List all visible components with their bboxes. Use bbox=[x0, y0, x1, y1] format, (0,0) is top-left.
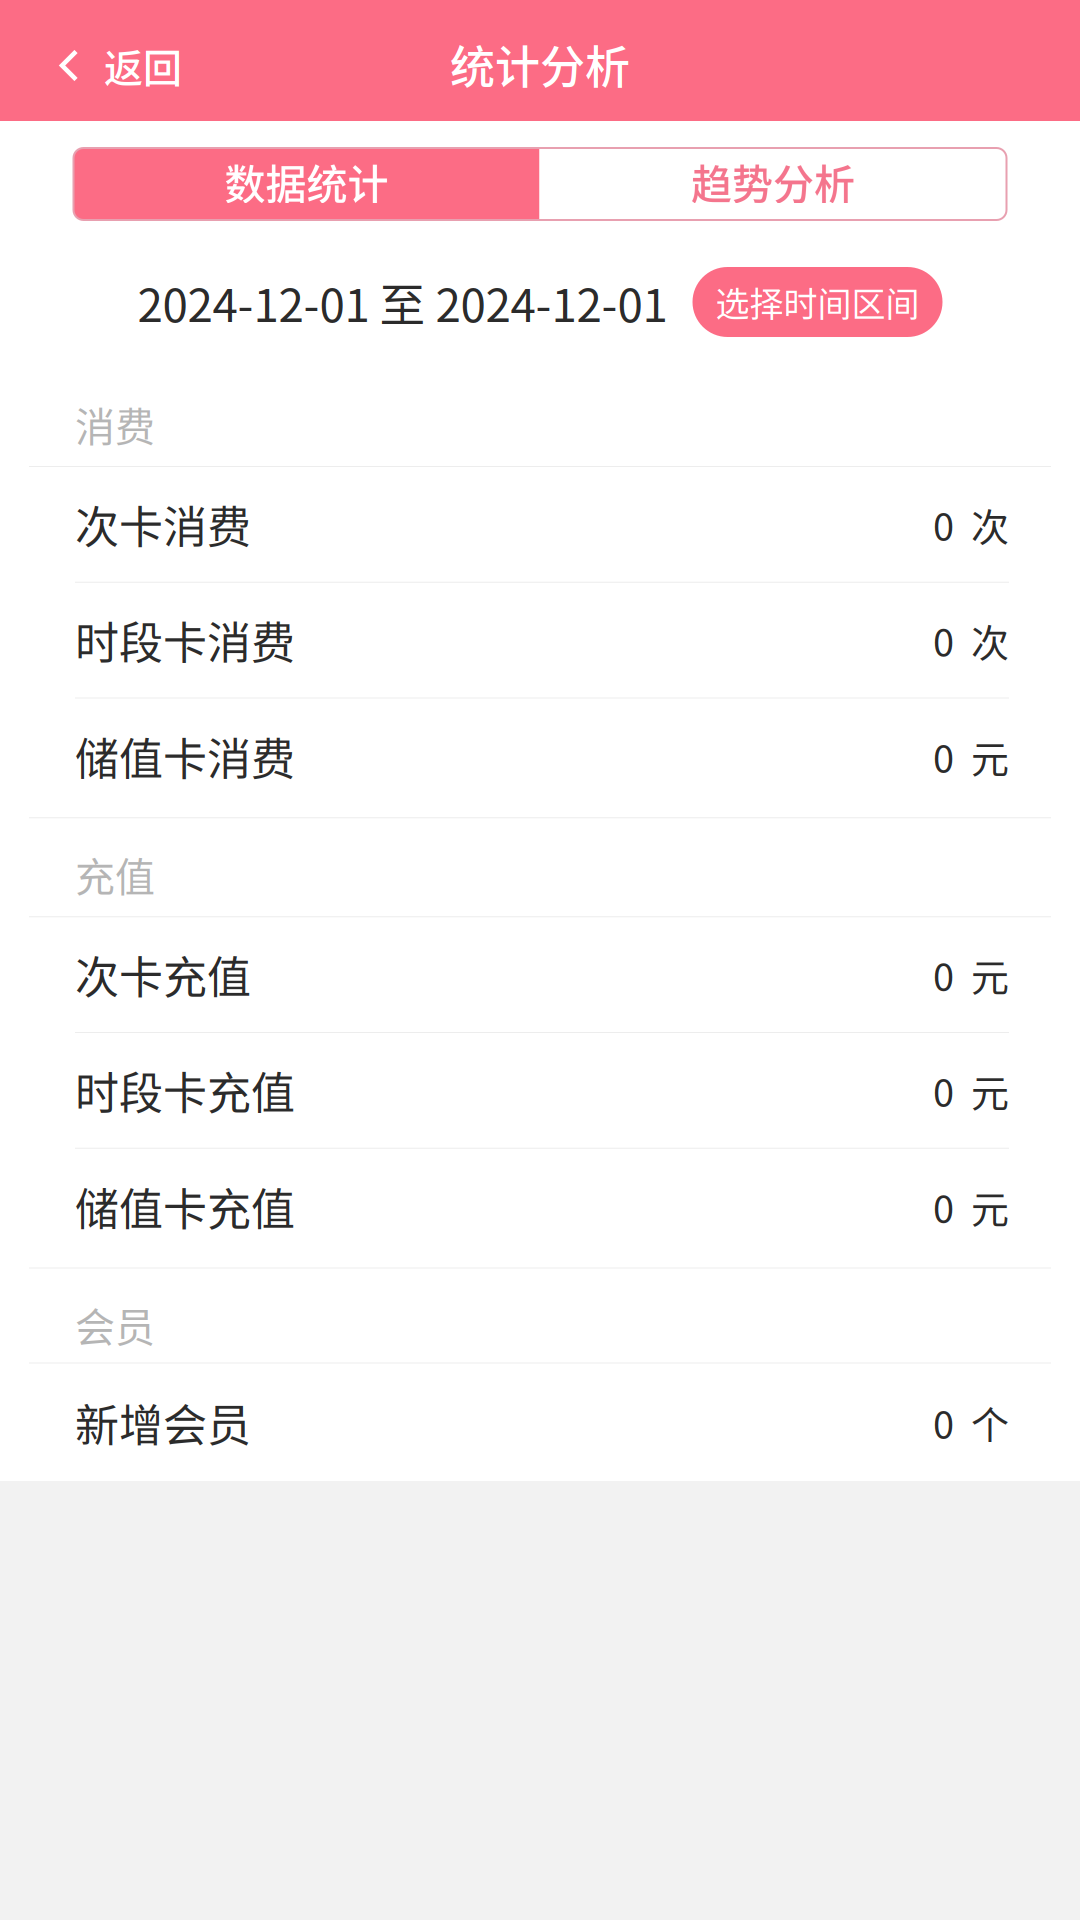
staticText: 返回 bbox=[104, 37, 182, 94]
staticText: 消费 bbox=[75, 395, 155, 453]
staticText: 次卡消费 bbox=[75, 492, 251, 556]
staticText: 数据统计 bbox=[224, 152, 388, 211]
button[interactable]: 储值卡消费 bbox=[0, 698, 1080, 814]
staticText: 0 元 bbox=[933, 1063, 1009, 1118]
staticText: 0 次 bbox=[933, 497, 1009, 552]
staticText: 新增会员 bbox=[75, 1391, 251, 1454]
button[interactable]: 储值卡充值 bbox=[0, 1149, 1080, 1265]
staticText: 2024-12-01 至 2024-12-01 bbox=[137, 269, 667, 335]
staticText: 时段卡消费 bbox=[75, 608, 295, 672]
button[interactable]: 次卡消费 bbox=[0, 467, 1080, 583]
button[interactable]: 时段卡消费 bbox=[0, 583, 1080, 699]
staticText: 充值 bbox=[75, 845, 155, 903]
staticText: 0 次 bbox=[933, 613, 1009, 668]
button[interactable]: 选择时间区间 bbox=[692, 267, 942, 337]
staticText: 时段卡充值 bbox=[75, 1058, 295, 1122]
button[interactable]: 返回 bbox=[0, 0, 218, 121]
staticText: 0 元 bbox=[933, 1179, 1009, 1234]
staticText: 储值卡充值 bbox=[75, 1175, 295, 1238]
staticText: 储值卡消费 bbox=[75, 724, 295, 788]
staticText: 趋势分析 bbox=[691, 152, 855, 211]
staticText: 次卡充值 bbox=[75, 943, 251, 1006]
staticText: 统计分析 bbox=[450, 32, 630, 97]
staticText: 0 个 bbox=[933, 1395, 1009, 1450]
button[interactable]: 新增会员 bbox=[0, 1363, 1080, 1481]
staticText: 0 元 bbox=[933, 729, 1009, 784]
button[interactable]: 次卡充值 bbox=[0, 917, 1080, 1033]
staticText: 0 元 bbox=[933, 947, 1009, 1002]
button[interactable]: 趋势分析 bbox=[539, 148, 1006, 220]
button[interactable]: 时段卡充值 bbox=[0, 1033, 1080, 1149]
staticText: 会员 bbox=[75, 1295, 155, 1353]
button[interactable]: 数据统计 bbox=[73, 148, 539, 220]
staticText: 选择时间区间 bbox=[715, 277, 919, 327]
